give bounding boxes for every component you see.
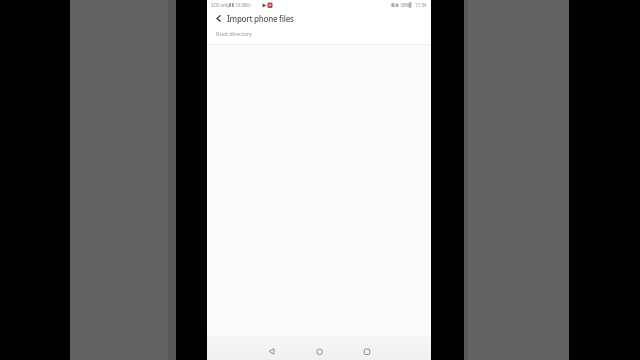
staticText: 10.0B/s — [235, 2, 251, 9]
staticText: SOS only — [211, 2, 230, 9]
staticText: 38% — [400, 2, 409, 9]
staticText: 11:34 — [415, 2, 427, 9]
staticText: Root directory — [216, 30, 252, 38]
staticText: Import phone files — [227, 13, 294, 24]
